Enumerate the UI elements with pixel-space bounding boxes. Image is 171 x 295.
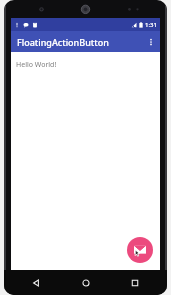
staticText: FloatingActionButton (17, 36, 109, 48)
button[interactable]: Home (76, 273, 96, 293)
button[interactable]: Recent apps (125, 273, 145, 293)
button[interactable]: More options (142, 33, 160, 51)
button[interactable]: Back (26, 273, 46, 293)
button[interactable]: Send email (127, 237, 153, 263)
staticText: Hello World! (16, 60, 57, 70)
staticText: 1:31 (145, 21, 157, 29)
